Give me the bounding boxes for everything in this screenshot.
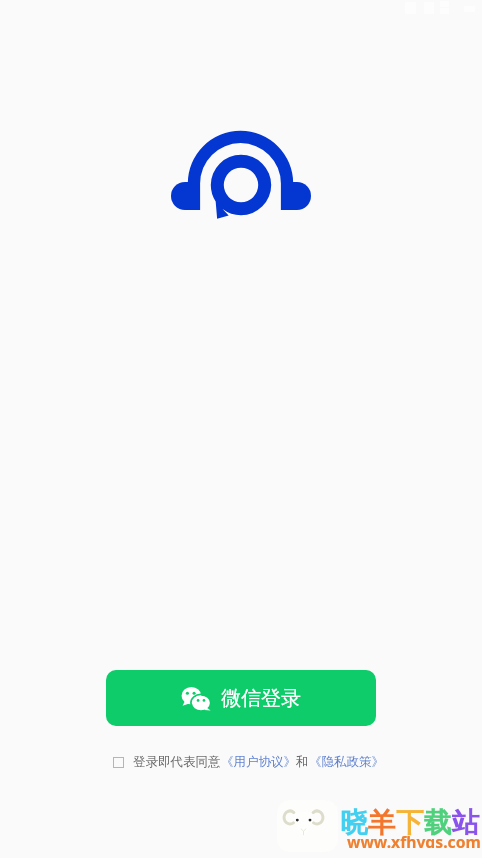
button[interactable]: 《隐私政策》	[309, 754, 384, 770]
staticText: www.xfhygs.com	[347, 831, 481, 848]
staticText: 微信登录	[221, 686, 301, 711]
button[interactable]: 《用户协议》	[221, 754, 296, 770]
staticText: 载	[424, 806, 452, 841]
staticText: 晓	[340, 806, 368, 841]
staticText: 登录即代表同意	[133, 754, 221, 770]
staticText: 下	[396, 806, 424, 841]
staticText: 羊	[368, 806, 396, 841]
staticText: 和	[296, 754, 309, 770]
button[interactable]: Agree checkbox	[113, 757, 124, 768]
staticText: 站	[452, 806, 480, 841]
button[interactable]: 微信登录	[106, 670, 376, 726]
